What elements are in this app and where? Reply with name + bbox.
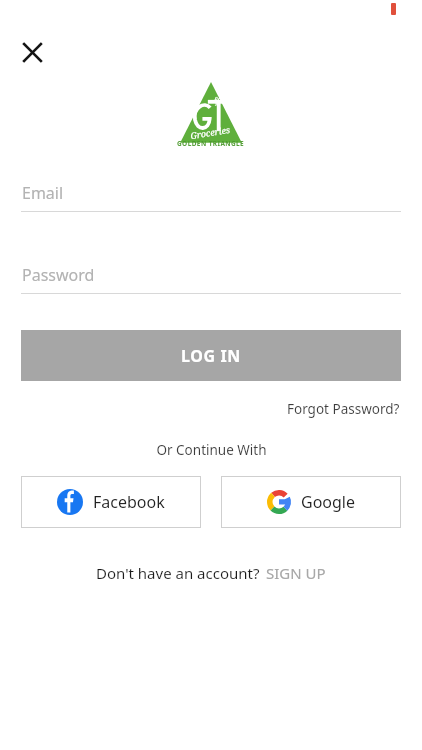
staticText: Groceries bbox=[189, 123, 232, 141]
staticText: Don't have an account? bbox=[96, 563, 260, 583]
button[interactable]: Facebook bbox=[21, 476, 201, 528]
button[interactable]: Email bbox=[21, 182, 401, 212]
staticText: Password bbox=[22, 264, 95, 286]
staticText: Facebook bbox=[93, 491, 165, 513]
staticText: Google bbox=[301, 491, 356, 513]
staticText: GOLDEN TRIANGLE bbox=[177, 139, 245, 148]
staticText: Email bbox=[22, 182, 64, 204]
button[interactable]: Close bbox=[12, 32, 52, 72]
button[interactable]: Password bbox=[21, 264, 401, 294]
button[interactable]: LOG IN bbox=[21, 330, 401, 381]
button[interactable]: Google bbox=[221, 476, 401, 528]
staticText: Forgot Password? bbox=[287, 400, 400, 418]
button[interactable]: Forgot Password? bbox=[283, 398, 404, 420]
staticText: LOG IN bbox=[181, 345, 241, 367]
button[interactable]: SIGN UP bbox=[266, 563, 326, 583]
staticText: fresh bbox=[213, 89, 234, 106]
staticText: SIGN UP bbox=[266, 563, 326, 583]
staticText: Or Continue With bbox=[156, 441, 267, 459]
